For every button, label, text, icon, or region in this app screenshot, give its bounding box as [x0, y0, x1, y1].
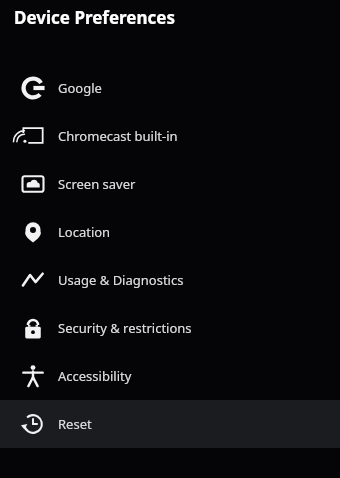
- button[interactable]: Chromecast built-in: [0, 112, 340, 160]
- staticText: Security & restrictions: [58, 319, 192, 337]
- button[interactable]: Usage & Diagnostics: [0, 256, 340, 304]
- staticText: Usage & Diagnostics: [58, 271, 184, 289]
- staticText: Google: [58, 79, 102, 97]
- button[interactable]: Reset: [0, 400, 340, 448]
- button[interactable]: Security & restrictions: [0, 304, 340, 352]
- button[interactable]: Screen saver: [0, 160, 340, 208]
- staticText: Chromecast built-in: [58, 127, 178, 145]
- staticText: Location: [58, 223, 111, 241]
- staticText: Screen saver: [58, 175, 136, 193]
- button[interactable]: Location: [0, 208, 340, 256]
- button[interactable]: Google: [0, 64, 340, 112]
- staticText: Reset: [58, 415, 92, 433]
- staticText: Accessibility: [58, 367, 132, 385]
- staticText: Device Preferences: [14, 6, 175, 29]
- button[interactable]: Accessibility: [0, 352, 340, 400]
